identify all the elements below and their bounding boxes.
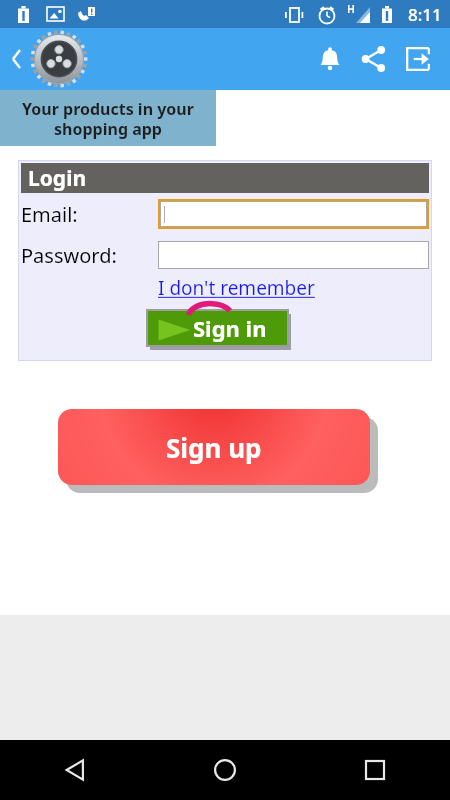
button[interactable] bbox=[160, 201, 427, 227]
button[interactable]: Sign in bbox=[147, 310, 291, 350]
staticText: I don't remember bbox=[158, 275, 315, 301]
staticText: Your products in your shopping app bbox=[22, 98, 194, 139]
staticText: Email: bbox=[21, 201, 158, 228]
button[interactable]: Back bbox=[0, 28, 30, 90]
staticText: Sign up bbox=[166, 430, 262, 465]
button[interactable]: Sign up bbox=[58, 409, 378, 493]
button[interactable] bbox=[158, 241, 429, 269]
button[interactable]: Log out bbox=[396, 37, 440, 81]
staticText: Login bbox=[28, 164, 87, 193]
button[interactable]: Home bbox=[150, 740, 300, 800]
staticText: 8:11 bbox=[408, 3, 442, 26]
staticText: Sign in bbox=[193, 313, 267, 343]
button[interactable]: Share bbox=[352, 37, 396, 81]
button[interactable]: I don't remember bbox=[158, 275, 315, 301]
button[interactable]: Back bbox=[0, 740, 150, 800]
button[interactable]: Notifications bbox=[308, 37, 352, 81]
button[interactable]: Recent apps bbox=[300, 740, 450, 800]
staticText: Password: bbox=[21, 242, 158, 269]
